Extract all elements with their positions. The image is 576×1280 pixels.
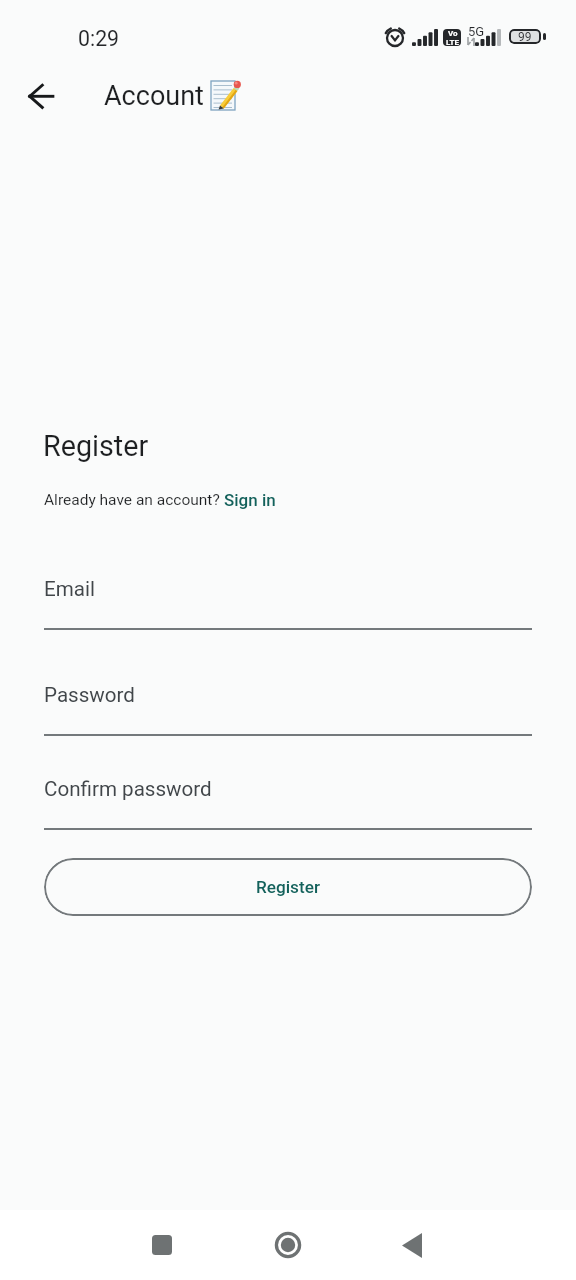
button[interactable]: Home: [264, 1221, 312, 1269]
staticText: Vo: [448, 29, 458, 38]
staticText: Confirm password: [44, 777, 212, 801]
staticText: Account: [104, 80, 204, 112]
staticText: 0:29: [78, 26, 120, 51]
staticText: 5G: [468, 24, 485, 39]
button[interactable]: Recent apps: [138, 1221, 186, 1269]
button[interactable]: Register: [44, 858, 532, 916]
staticText: Register: [43, 429, 149, 463]
staticText: LTE: [446, 38, 459, 46]
button[interactable]: Back: [17, 72, 65, 120]
staticText: Password: [44, 683, 135, 707]
staticText: Already have an account?: [44, 491, 224, 509]
staticText: Register: [256, 877, 320, 897]
staticText: Email: [44, 577, 95, 601]
staticText: 99: [518, 30, 532, 44]
button[interactable]: Back: [388, 1221, 436, 1269]
button[interactable]: Sign in: [224, 490, 276, 510]
staticText: Sign in: [224, 490, 276, 510]
